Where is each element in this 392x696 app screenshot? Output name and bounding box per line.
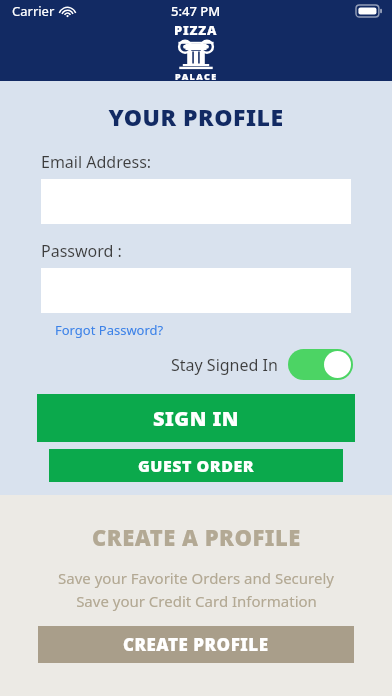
button[interactable]: Stay Signed In — [171, 349, 353, 380]
staticText: Email Address: — [41, 151, 152, 173]
button[interactable]: Stay Signed In toggle, on — [288, 349, 353, 380]
staticText: GUEST ORDER — [138, 455, 255, 477]
staticText: YOUR PROFILE — [0, 101, 392, 132]
staticText: Forgot Password? — [55, 321, 164, 339]
other: Battery — [356, 5, 382, 17]
staticText: SIGN IN — [153, 405, 239, 432]
staticText: Carrier — [12, 2, 55, 20]
staticText: PIZZA — [174, 21, 218, 39]
staticText: 5:47 PM — [171, 2, 221, 20]
other: Wi-Fi — [60, 5, 75, 17]
staticText: CREATE A PROFILE — [92, 522, 301, 552]
button[interactable]: GUEST ORDER — [49, 449, 343, 482]
staticText: Save your Favorite Orders and Securely — [58, 568, 334, 588]
staticText: Save your Credit Card Information — [76, 591, 317, 611]
button[interactable]: Forgot Password? — [53, 319, 166, 341]
staticText: PALACE — [175, 70, 218, 82]
staticText: CREATE PROFILE — [123, 633, 269, 656]
staticText: Stay Signed In — [171, 354, 278, 376]
button[interactable]: SIGN IN — [37, 394, 355, 442]
button[interactable]: CREATE PROFILE — [38, 626, 354, 663]
staticText: Password : — [41, 240, 122, 262]
